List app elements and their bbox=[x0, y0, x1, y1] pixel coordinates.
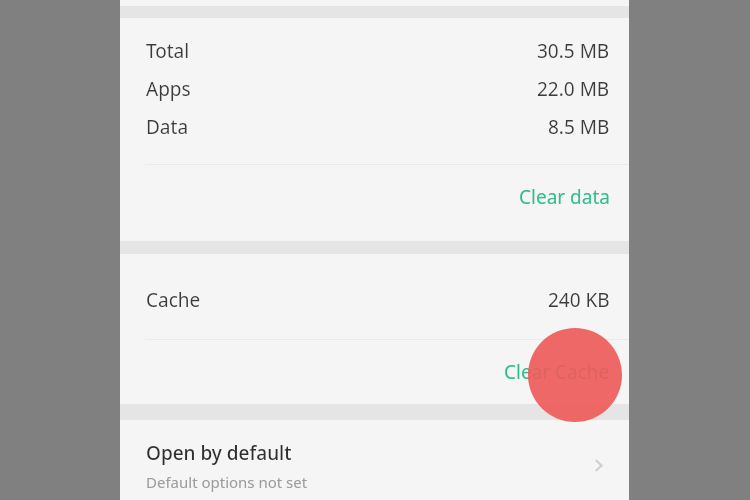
staticText: 8.5 MB bbox=[548, 114, 610, 140]
button[interactable]: Open by default bbox=[120, 420, 629, 500]
button[interactable]: Data bbox=[120, 108, 629, 146]
button[interactable]: Clear data bbox=[120, 165, 629, 229]
staticText: 240 KB bbox=[548, 287, 610, 313]
staticText: Apps bbox=[146, 76, 191, 102]
staticText: 22.0 MB bbox=[537, 76, 610, 102]
staticText: Open by default bbox=[146, 440, 292, 466]
staticText: Total bbox=[146, 38, 190, 64]
staticText: Clear data bbox=[519, 184, 610, 210]
staticText: 30.5 MB bbox=[537, 38, 610, 64]
staticText: Data bbox=[146, 114, 189, 140]
staticText: Default options not set bbox=[146, 472, 308, 492]
button[interactable]: Cache bbox=[120, 281, 629, 319]
button[interactable]: Apps bbox=[120, 70, 629, 108]
staticText: Cache bbox=[146, 287, 201, 313]
other: Open by default bbox=[585, 452, 611, 478]
button[interactable]: Total bbox=[120, 32, 629, 70]
button[interactable]: Clear Cache bbox=[120, 340, 629, 404]
staticText: Clear Cache bbox=[504, 359, 610, 385]
